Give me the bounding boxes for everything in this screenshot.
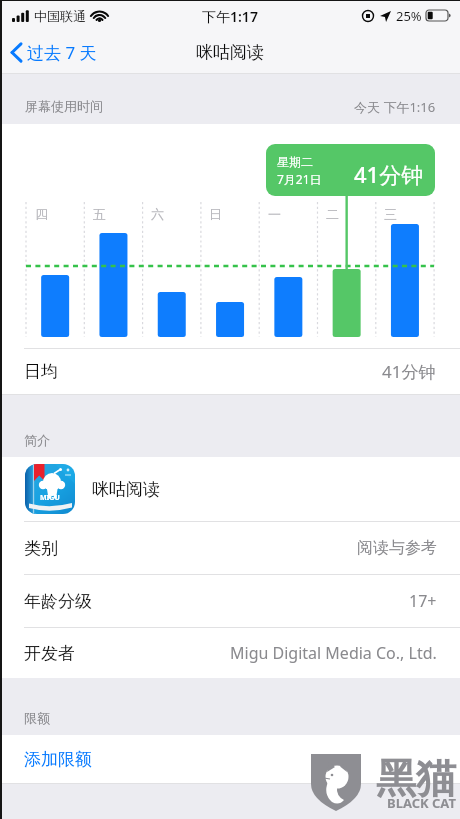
staticText: 41分钟 bbox=[382, 360, 436, 383]
staticText: 7月21日 bbox=[277, 171, 322, 187]
staticText: 一 bbox=[268, 206, 281, 222]
staticText: 咪咕阅读 bbox=[196, 42, 264, 63]
staticText: 星期二 bbox=[277, 154, 313, 169]
button[interactable]: MIGU bbox=[25, 457, 460, 521]
staticText: 下午1:17 bbox=[202, 7, 258, 26]
button[interactable]: 过去 7 天 bbox=[10, 41, 97, 64]
button[interactable]: 添加限额 bbox=[0, 735, 460, 783]
staticText: 日均 bbox=[24, 361, 58, 382]
staticText: 咪咕阅读 bbox=[92, 479, 160, 500]
staticText: 日 bbox=[209, 206, 222, 222]
staticText: 年龄分级 bbox=[24, 591, 92, 612]
staticText: MIGU bbox=[40, 493, 60, 503]
staticText: 黑猫 bbox=[376, 753, 456, 803]
staticText: 中国联通 bbox=[34, 8, 86, 24]
staticText: 开发者 bbox=[24, 643, 75, 664]
staticText: 限额 bbox=[24, 710, 50, 726]
staticText: 今天 下午1:16 bbox=[354, 98, 436, 116]
staticText: 五 bbox=[93, 206, 106, 222]
staticText: BLACK CAT bbox=[387, 794, 456, 810]
staticText: 六 bbox=[151, 206, 164, 222]
staticText: 类别 bbox=[24, 538, 58, 559]
staticText: 41分钟 bbox=[354, 159, 424, 189]
staticText: 简介 bbox=[24, 432, 50, 448]
staticText: 屏幕使用时间 bbox=[25, 98, 103, 114]
staticText: 三 bbox=[384, 206, 397, 222]
staticText: 25% bbox=[396, 7, 422, 25]
staticText: 二 bbox=[326, 206, 339, 222]
staticText: 过去 7 天 bbox=[27, 41, 97, 64]
staticText: Migu Digital Media Co., Ltd. bbox=[230, 642, 437, 664]
staticText: 四 bbox=[35, 206, 48, 222]
staticText: 阅读与参考 bbox=[357, 538, 437, 558]
staticText: 添加限额 bbox=[24, 749, 92, 770]
staticText: 17+ bbox=[409, 590, 437, 612]
